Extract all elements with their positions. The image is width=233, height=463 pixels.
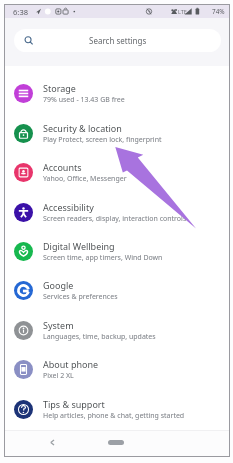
button[interactable]: Tips & support [5,390,229,429]
button[interactable]: Home [108,440,124,445]
staticText: Languages, time, backup, updates [43,332,156,342]
staticText: Play Protect, screen lock, fingerprint [43,135,162,145]
button[interactable]: Google [5,271,229,310]
staticText: Search settings [89,35,147,46]
button[interactable]: Search settings [14,29,221,52]
staticText: Storage [43,82,76,94]
staticText: Tips & support [43,398,105,410]
button[interactable]: Back [45,437,61,448]
staticText: Accounts [43,161,82,173]
staticText: Screen readers, display, interaction con… [43,214,187,224]
staticText: 74% [212,7,225,16]
button[interactable]: Digital Wellbeing [5,232,229,271]
staticText: Services & preferences [43,292,118,302]
staticText: Pixel 2 XL [43,371,74,381]
staticText: Security & location [43,122,122,134]
staticText: Yahoo, Office, Messenger [43,174,127,184]
staticText: Google [43,279,74,291]
button[interactable]: About phone [5,350,229,389]
staticText: Screen time, app timers, Wind Down [43,253,163,263]
staticText: LTE [178,8,187,15]
button[interactable]: Security & location [5,114,229,153]
staticText: Help articles, phone & chat, getting sta… [43,411,185,421]
staticText: 6:38 [13,7,29,17]
staticText: System [43,319,74,331]
button[interactable]: Accessibility [5,193,229,232]
button[interactable]: Storage [5,74,229,113]
button[interactable]: System [5,311,229,350]
staticText: Digital Wellbeing [43,240,115,252]
button[interactable]: Accounts [5,153,229,192]
staticText: 79% used - 13.43 GB free [43,95,125,105]
staticText: Accessibility [43,201,94,213]
staticText: About phone [43,358,99,370]
